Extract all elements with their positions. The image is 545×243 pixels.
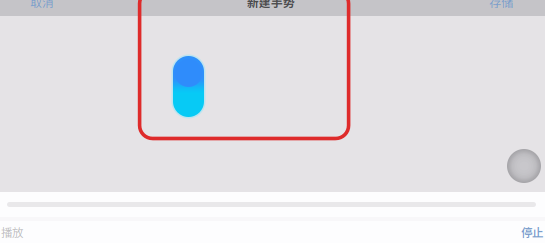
button[interactable]: AssistiveTouch	[507, 149, 541, 183]
staticText: 播放	[1, 224, 23, 240]
button[interactable]: 存储	[478, 0, 524, 10]
staticText: 停止	[521, 224, 543, 240]
staticText: 存储	[489, 0, 513, 11]
staticText: 新建手势	[247, 0, 295, 10]
button[interactable]: 播放	[1, 222, 39, 242]
button[interactable]: 停止	[505, 222, 543, 242]
button[interactable]: 取消	[19, 0, 65, 10]
staticText: 取消	[30, 0, 54, 10]
